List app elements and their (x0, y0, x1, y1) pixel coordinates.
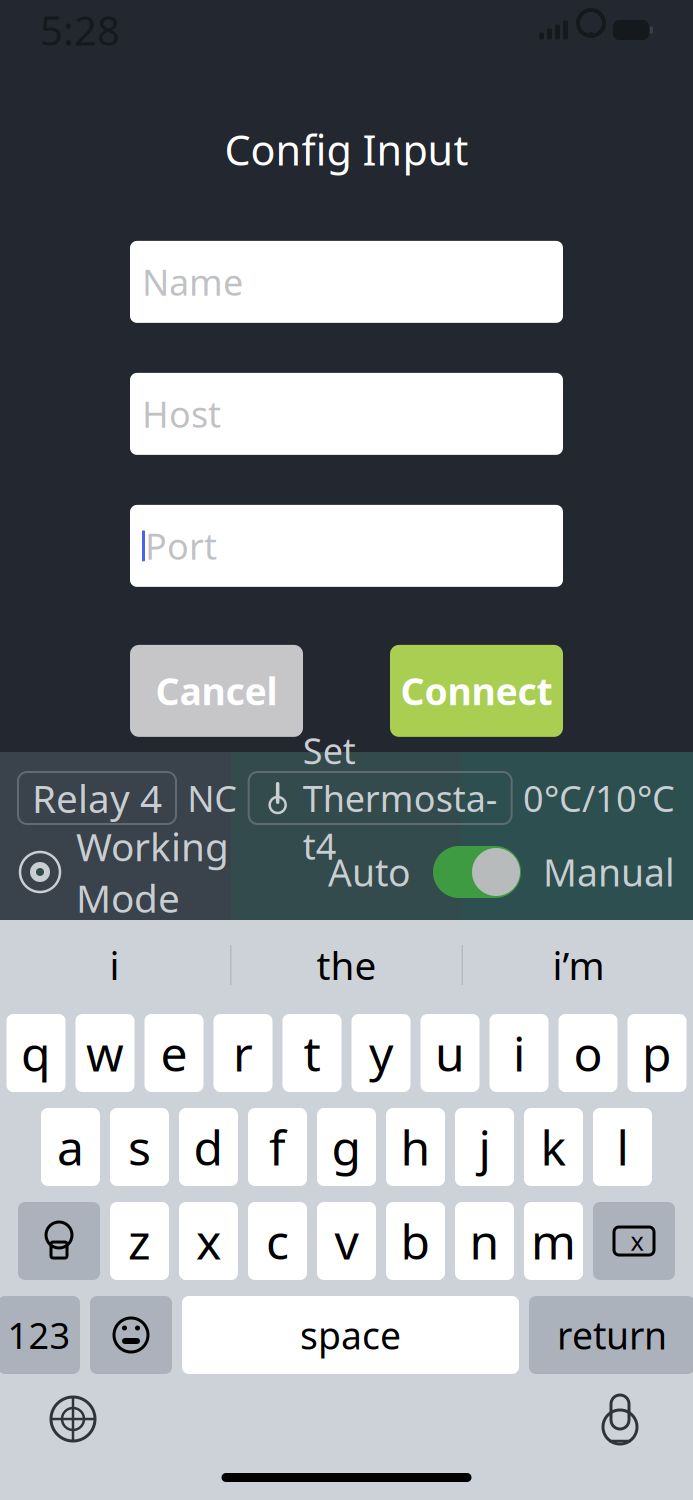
button[interactable]: the (231, 929, 461, 1001)
staticText: y (369, 1021, 393, 1085)
button[interactable]: i (489, 1014, 548, 1092)
staticText: k (540, 1115, 566, 1179)
staticText: a (57, 1115, 84, 1179)
staticText: Cancel (155, 666, 277, 716)
staticText: i’m (552, 939, 604, 991)
staticText: c (266, 1209, 289, 1273)
button[interactable]: Shift (18, 1202, 100, 1280)
button[interactable]: i (0, 929, 230, 1001)
staticText: e (160, 1021, 187, 1085)
button[interactable]: i’m (463, 929, 693, 1001)
button[interactable]: Emoji (90, 1296, 172, 1374)
button[interactable]: Cancel (130, 645, 303, 737)
staticText: z (128, 1209, 151, 1273)
button[interactable]: a (41, 1108, 100, 1186)
staticText: x (630, 1224, 643, 1258)
staticText: 0°C/10°C (523, 774, 675, 822)
staticText: s (128, 1115, 151, 1179)
button[interactable]: r (213, 1014, 272, 1092)
staticText: Relay 4 (32, 772, 162, 824)
button[interactable]: f (248, 1108, 307, 1186)
button[interactable]: Host (130, 373, 563, 455)
button[interactable]: x (179, 1202, 238, 1280)
staticText: l (616, 1115, 628, 1179)
staticText: Manual (543, 847, 675, 897)
staticText: p (642, 1021, 672, 1085)
button[interactable]: o (558, 1014, 617, 1092)
button[interactable]: s (110, 1108, 169, 1186)
button[interactable]: Working mode toggle (433, 846, 521, 898)
staticText: n (469, 1209, 499, 1273)
button[interactable]: e (144, 1014, 203, 1092)
staticText: Name (142, 258, 243, 306)
button[interactable]: v (317, 1202, 376, 1280)
staticText: 123 (7, 1311, 70, 1359)
button[interactable]: Delete (593, 1202, 675, 1280)
staticText: h (400, 1115, 430, 1179)
staticText: r (233, 1021, 253, 1085)
staticText: g (331, 1115, 361, 1179)
staticText: i (513, 1021, 525, 1085)
staticText: space (300, 1310, 401, 1360)
button[interactable]: d (179, 1108, 238, 1186)
staticText: 5:28 (40, 3, 120, 56)
staticText: v (334, 1209, 358, 1273)
staticText: NC (187, 774, 237, 822)
button[interactable]: b (386, 1202, 445, 1280)
button[interactable]: g (317, 1108, 376, 1186)
button[interactable]: 123 (0, 1296, 80, 1374)
button[interactable]: z (110, 1202, 169, 1280)
staticText: b (400, 1209, 430, 1273)
staticText: return (557, 1310, 667, 1360)
button[interactable]: Switch keyboard (38, 1388, 108, 1450)
button[interactable]: Port (130, 505, 563, 587)
button[interactable]: p (627, 1014, 686, 1092)
button[interactable]: j (455, 1108, 514, 1186)
staticText: i (109, 939, 119, 991)
staticText: x (196, 1209, 221, 1273)
button[interactable]: Connect (390, 645, 563, 737)
staticText: Connect (400, 666, 552, 716)
button[interactable]: Name (130, 241, 563, 323)
button[interactable]: c (248, 1202, 307, 1280)
button[interactable]: m (524, 1202, 583, 1280)
staticText: f (269, 1115, 286, 1179)
staticText: Auto (328, 847, 411, 897)
button[interactable]: q (6, 1014, 65, 1092)
button[interactable]: y (351, 1014, 410, 1092)
button[interactable]: t (282, 1014, 341, 1092)
staticText: w (86, 1021, 124, 1085)
staticText: t (303, 1021, 320, 1085)
staticText: o (573, 1021, 602, 1085)
staticText: Working Mode (76, 821, 229, 923)
staticText: Port (145, 522, 217, 570)
button[interactable]: return (529, 1296, 693, 1374)
button[interactable]: Dictation (585, 1388, 655, 1450)
staticText: u (435, 1021, 465, 1085)
staticText: Host (142, 390, 221, 438)
staticText: q (21, 1021, 51, 1085)
button[interactable]: n (455, 1202, 514, 1280)
staticText: Config Input (224, 122, 468, 177)
button[interactable]: w (75, 1014, 134, 1092)
staticText: the (316, 939, 376, 991)
button[interactable]: u (420, 1014, 479, 1092)
button[interactable]: l (593, 1108, 652, 1186)
staticText: j (478, 1115, 490, 1179)
staticText: m (531, 1209, 576, 1273)
staticText: Set Thermostat4 (303, 726, 498, 870)
button[interactable]: h (386, 1108, 445, 1186)
button[interactable]: space (182, 1296, 519, 1374)
staticText: d (193, 1115, 223, 1179)
button[interactable]: k (524, 1108, 583, 1186)
